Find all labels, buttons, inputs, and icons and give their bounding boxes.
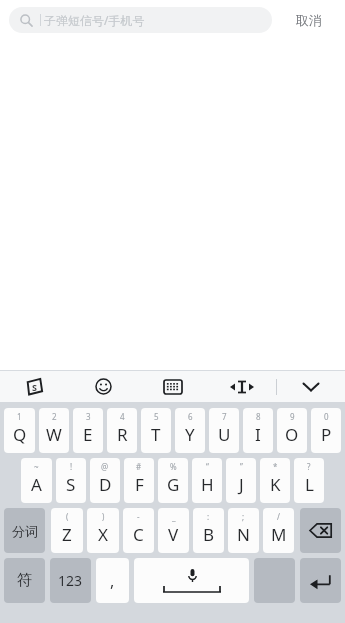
staticText: ~ <box>34 461 39 472</box>
staticText: F <box>135 473 144 496</box>
button[interactable]: 6 <box>175 408 205 453</box>
staticText: D <box>99 473 112 496</box>
button[interactable]: Enter <box>300 558 341 603</box>
staticText: 6 <box>188 411 193 422</box>
staticText: I <box>255 423 261 446</box>
button[interactable]: 0 <box>311 408 341 453</box>
staticText: J <box>239 473 244 496</box>
staticText: G <box>167 473 180 496</box>
staticText: # <box>136 461 142 472</box>
staticText: M <box>271 523 287 546</box>
staticText: ) <box>102 511 105 522</box>
staticText: 5 <box>154 411 159 422</box>
staticText: , <box>110 570 115 592</box>
staticText: R <box>117 423 128 446</box>
button[interactable]: _ <box>158 508 189 553</box>
button[interactable]: Input method settings <box>0 371 69 402</box>
staticText: K <box>270 473 281 496</box>
staticText: : <box>207 511 210 522</box>
button[interactable]: # <box>124 458 154 503</box>
button[interactable]: ” <box>226 458 256 503</box>
staticText: U <box>218 423 231 446</box>
staticText: A <box>31 473 42 496</box>
staticText: 7 <box>222 411 227 422</box>
staticText: “ <box>206 461 209 472</box>
button[interactable]: 7 <box>209 408 239 453</box>
staticText: ! <box>70 461 73 472</box>
staticText: E <box>83 423 93 446</box>
button[interactable]: Emoji <box>69 371 138 402</box>
staticText: ; <box>242 511 245 522</box>
staticText: T <box>151 423 161 446</box>
button[interactable]: 8 <box>243 408 273 453</box>
button[interactable]: 4 <box>107 408 137 453</box>
staticText: H <box>201 473 214 496</box>
button[interactable]: 2 <box>39 408 69 453</box>
staticText: B <box>203 523 215 546</box>
staticText: / <box>277 511 280 522</box>
staticText: N <box>237 523 250 546</box>
staticText: 0 <box>324 411 329 422</box>
button[interactable]: ~ <box>21 458 52 503</box>
button[interactable]: , <box>96 558 129 603</box>
button[interactable]: 1 <box>4 408 35 453</box>
button[interactable]: - <box>123 508 154 553</box>
button[interactable]: 分词 <box>4 508 45 553</box>
button[interactable]: 3 <box>73 408 103 453</box>
staticText: 1 <box>17 411 22 422</box>
button[interactable]: % <box>158 458 188 503</box>
staticText: - <box>137 511 140 522</box>
button[interactable]: / <box>263 508 294 553</box>
staticText: ? <box>307 461 311 472</box>
staticText: 符 <box>17 571 32 590</box>
staticText: ( <box>66 511 69 522</box>
staticText: S <box>66 473 76 496</box>
button[interactable]: Move cursor <box>207 371 276 402</box>
staticText: Z <box>62 523 72 546</box>
button[interactable]: “ <box>192 458 222 503</box>
staticText: C <box>133 523 144 546</box>
button[interactable]: ; <box>228 508 259 553</box>
staticText: W <box>46 423 62 446</box>
staticText: L <box>305 473 314 496</box>
staticText: 4 <box>120 411 125 422</box>
staticText: Y <box>185 423 195 446</box>
staticText: 3 <box>86 411 91 422</box>
button[interactable]: ) <box>87 508 119 553</box>
button[interactable]: Backspace <box>300 508 341 553</box>
staticText: 123 <box>58 571 83 590</box>
staticText: X <box>98 523 108 546</box>
staticText: % <box>170 461 177 472</box>
button[interactable]: 取消 <box>272 0 345 40</box>
button[interactable]: : <box>193 508 224 553</box>
staticText: 子弹短信号/手机号 <box>44 12 145 28</box>
staticText: Q <box>13 423 27 446</box>
button[interactable]: 9 <box>277 408 307 453</box>
button[interactable]: ? <box>294 458 324 503</box>
staticText: 9 <box>290 411 295 422</box>
button[interactable]: 符 <box>4 558 45 603</box>
button[interactable]: Keyboard layout <box>138 371 207 402</box>
button[interactable]: 5 <box>141 408 171 453</box>
staticText: 分词 <box>12 523 38 539</box>
button[interactable]: Hide keyboard <box>277 371 345 402</box>
staticText: S <box>32 381 37 393</box>
staticText: O <box>285 423 299 446</box>
button[interactable]: 123 <box>50 558 91 603</box>
staticText: * <box>273 461 278 472</box>
button[interactable]: @ <box>90 458 120 503</box>
staticText: @ <box>101 461 109 472</box>
staticText: 取消 <box>296 12 322 28</box>
button[interactable]: ! <box>56 458 86 503</box>
button[interactable]: Space <box>134 558 249 603</box>
staticText: V <box>168 523 179 546</box>
button[interactable]: * <box>260 458 290 503</box>
staticText: P <box>321 423 332 446</box>
staticText: 8 <box>256 411 261 422</box>
staticText: ” <box>240 461 243 472</box>
staticText: _ <box>172 511 176 522</box>
button[interactable]: ( <box>51 508 83 553</box>
staticText: 2 <box>52 411 57 422</box>
button[interactable]: 子弹短信号/手机号 <box>9 7 272 33</box>
